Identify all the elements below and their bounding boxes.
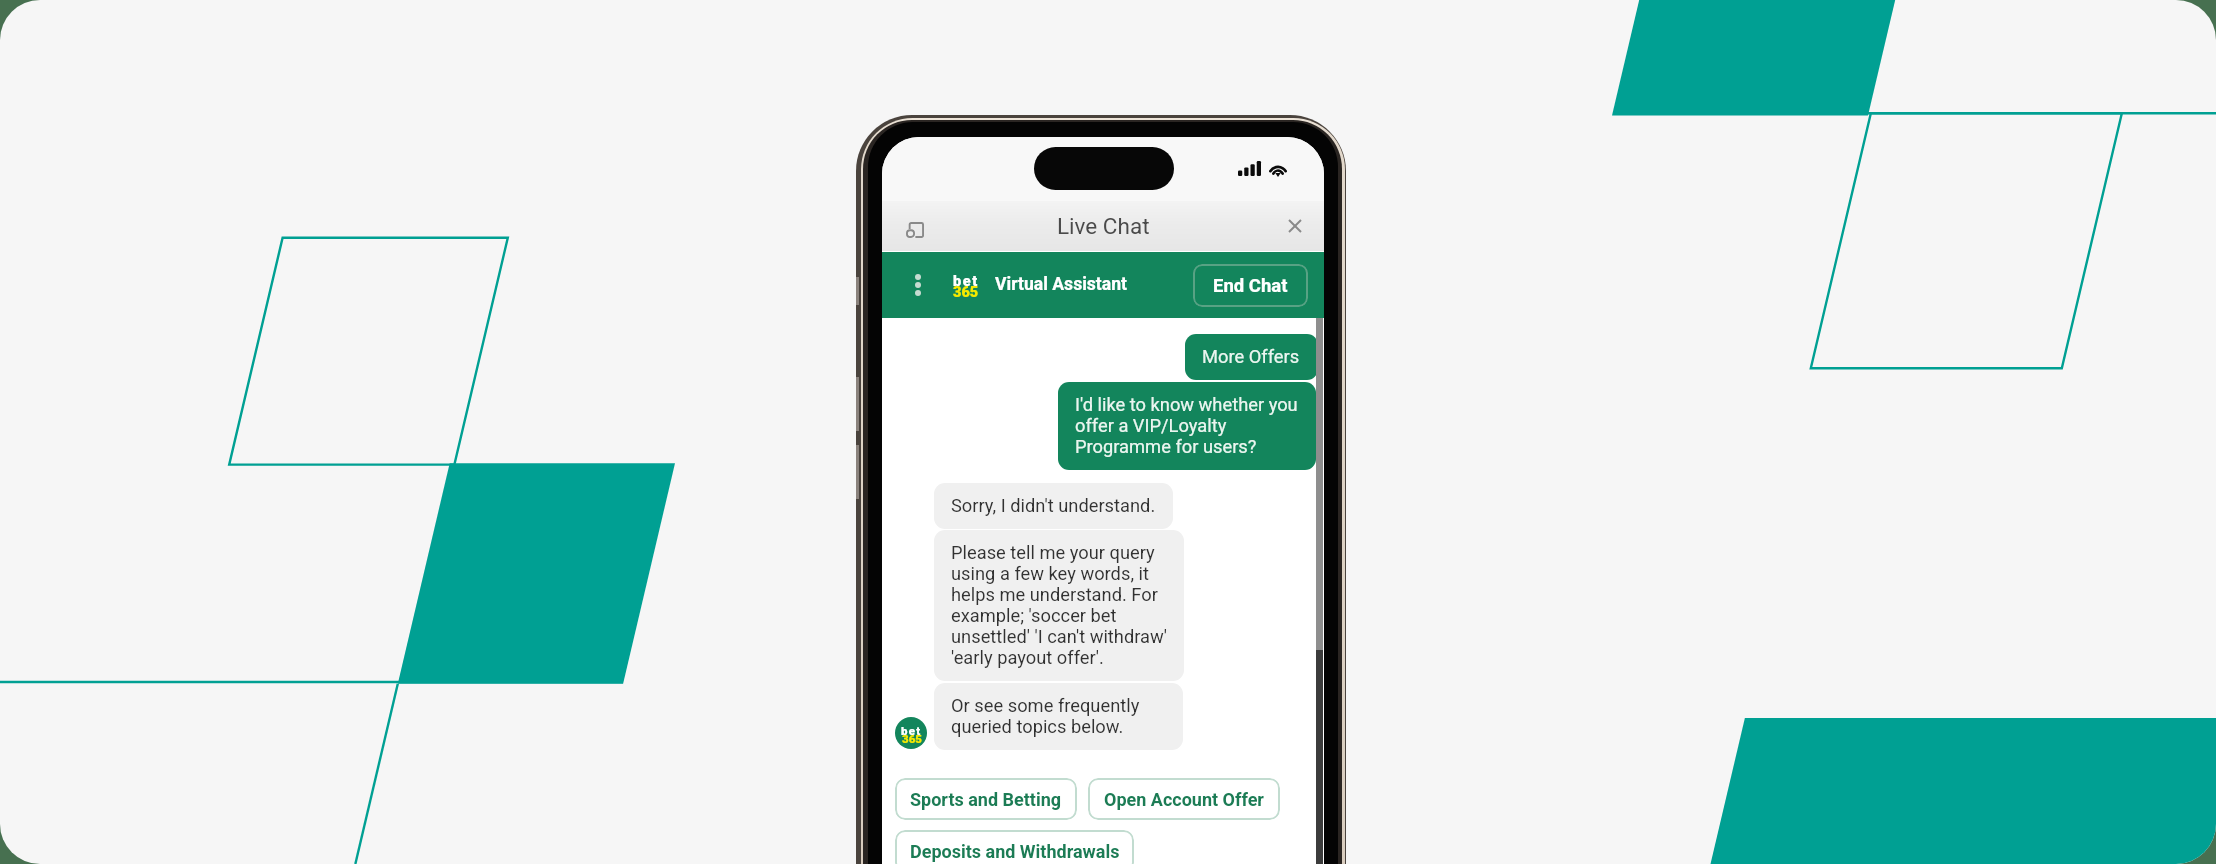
staticText: Please tell me your query using a few ke…	[951, 542, 1167, 668]
staticText: bet	[901, 724, 922, 737]
staticText: 365	[902, 732, 922, 745]
button[interactable]: End Chat	[1193, 264, 1308, 307]
staticText: Live Chat	[1057, 213, 1150, 239]
button[interactable]: Please tell me your query using a few ke…	[934, 530, 1184, 681]
staticText: Sports and Betting	[910, 789, 1062, 810]
button[interactable]: Close	[1278, 209, 1312, 243]
button[interactable]: More options	[904, 264, 932, 306]
staticText: More Offers	[1202, 346, 1300, 367]
staticText: Or see some frequently queried topics be…	[951, 695, 1140, 737]
staticText: Open Account Offer	[1104, 789, 1264, 810]
button[interactable]: More Offers	[1185, 334, 1318, 380]
button[interactable]: Deposits and Withdrawals	[895, 830, 1134, 864]
staticText: End Chat	[1213, 275, 1288, 297]
button[interactable]: Or see some frequently queried topics be…	[934, 683, 1183, 750]
button[interactable]: Sorry, I didn't understand.	[934, 483, 1173, 529]
staticText: Virtual Assistant	[995, 274, 1128, 295]
staticText: 365	[953, 284, 979, 301]
button[interactable]: Open Account Offer	[1088, 778, 1280, 820]
staticText: Deposits and Withdrawals	[910, 841, 1120, 862]
button[interactable]: Sports and Betting	[895, 778, 1077, 820]
button[interactable]: Minimise	[898, 213, 932, 247]
staticText: bet	[953, 273, 979, 290]
staticText: Sorry, I didn't understand.	[951, 495, 1156, 516]
button[interactable]: I'd like to know whether you offer a VIP…	[1058, 382, 1316, 470]
staticText: I'd like to know whether you offer a VIP…	[1075, 394, 1298, 457]
